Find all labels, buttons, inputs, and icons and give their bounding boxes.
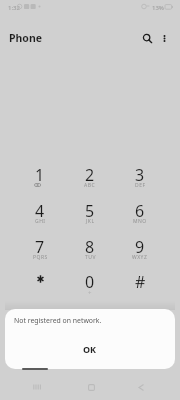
staticText: 9 — [135, 236, 145, 258]
staticText: ABC — [84, 182, 96, 189]
staticText: DEF — [135, 182, 146, 189]
button[interactable]: 7 — [15, 231, 65, 264]
button[interactable]: 5 — [65, 195, 115, 228]
staticText: PQRS — [33, 254, 48, 261]
button[interactable]: Search — [137, 28, 157, 48]
staticText: 6 — [135, 200, 145, 222]
staticText: OK — [83, 343, 97, 355]
button[interactable]: 1 — [15, 159, 65, 192]
button[interactable]: 9 — [115, 231, 165, 264]
staticText: WXYZ — [132, 254, 148, 261]
staticText: MNO — [133, 218, 147, 225]
staticText: 3 — [135, 164, 145, 186]
button[interactable]: 3 — [115, 159, 165, 192]
button[interactable]: Home — [79, 377, 103, 397]
staticText: GHI — [35, 218, 46, 225]
staticText: 13% — [152, 4, 164, 12]
staticText: Not registered on network. — [14, 316, 102, 325]
staticText: 4 — [35, 200, 45, 222]
staticText: # — [135, 271, 146, 293]
staticText: TUV — [85, 254, 96, 261]
button[interactable]: 4 — [15, 195, 65, 228]
button[interactable]: More options — [154, 28, 174, 48]
staticText: 0 — [85, 271, 95, 293]
button[interactable]: 6 — [115, 195, 165, 228]
button[interactable]: 0 — [65, 266, 115, 299]
button[interactable]: # — [115, 266, 165, 299]
staticText: JKL — [86, 218, 95, 225]
button[interactable] — [15, 266, 65, 299]
staticText: 1 — [35, 164, 45, 186]
staticText: + — [88, 289, 92, 297]
button[interactable]: OK — [70, 339, 110, 359]
staticText: Phone — [9, 31, 43, 45]
button[interactable]: 8 — [65, 231, 115, 264]
button[interactable]: Recents — [25, 377, 49, 397]
staticText: 5 — [85, 200, 95, 222]
staticText: 1:32 — [8, 4, 20, 12]
button[interactable]: 2 — [65, 159, 115, 192]
staticText: 8 — [85, 236, 95, 258]
staticText: 7 — [35, 236, 45, 258]
staticText: 2 — [85, 164, 95, 186]
